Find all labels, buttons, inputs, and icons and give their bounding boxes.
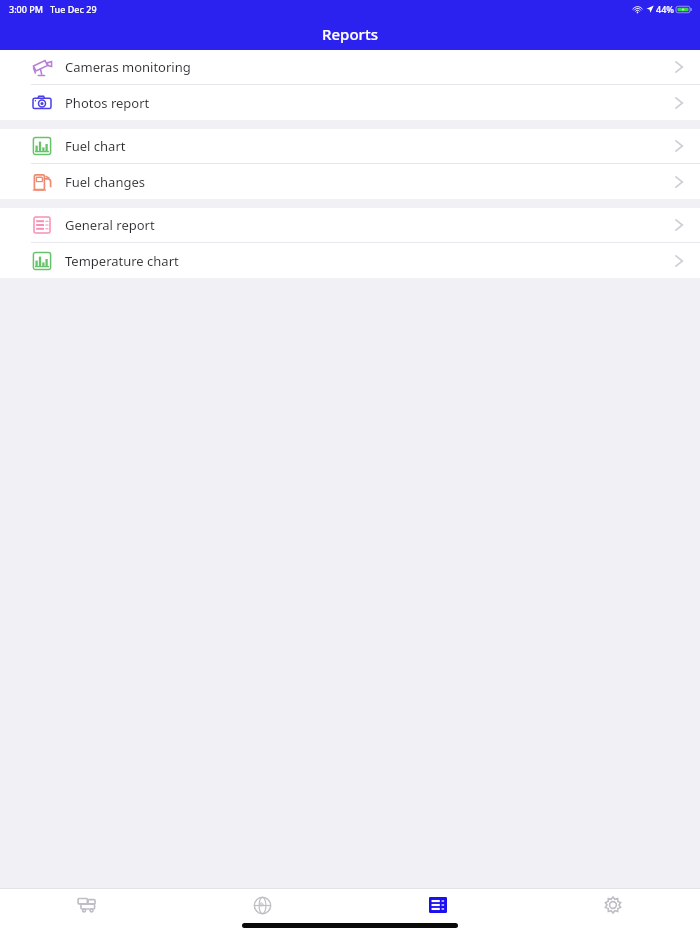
button[interactable]: Vehicles xyxy=(0,889,175,921)
button[interactable]: Fuel changes xyxy=(0,164,700,199)
staticText: Reports xyxy=(322,24,378,44)
button[interactable]: General report xyxy=(0,208,700,243)
button[interactable]: Temperature chart xyxy=(0,243,700,278)
button[interactable]: Settings xyxy=(525,889,700,921)
staticText: Temperature chart xyxy=(65,252,672,270)
staticText: Cameras monitoring xyxy=(65,58,672,76)
staticText: Tue Dec 29 xyxy=(50,3,97,15)
staticText: Photos report xyxy=(65,94,672,112)
button[interactable]: Photos report xyxy=(0,85,700,120)
staticText: General report xyxy=(65,216,672,234)
staticText: Fuel chart xyxy=(65,137,672,155)
button[interactable]: Reports xyxy=(350,889,525,921)
button[interactable]: Fuel chart xyxy=(0,129,700,164)
staticText: 3:00 PM xyxy=(9,3,43,15)
staticText: Fuel changes xyxy=(65,173,672,191)
staticText: 44% xyxy=(656,3,674,15)
button[interactable]: Map xyxy=(175,889,350,921)
button[interactable]: Cameras monitoring xyxy=(0,50,700,85)
